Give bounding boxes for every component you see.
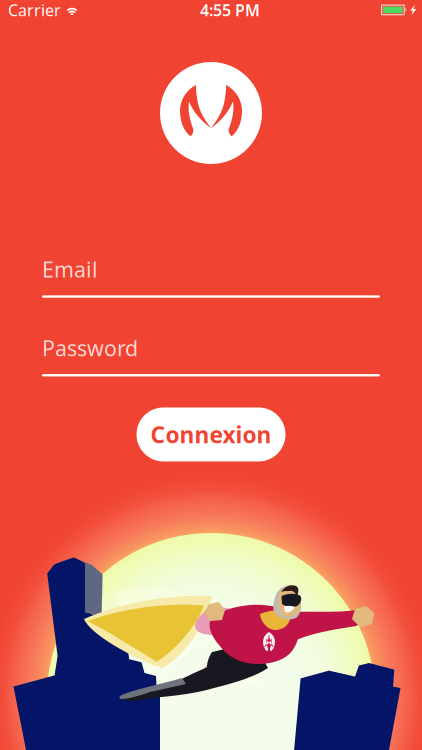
staticText: Carrier (8, 0, 61, 21)
staticText: Connexion (150, 419, 271, 449)
staticText: 4:55 PM (200, 0, 260, 21)
staticText: Email (42, 255, 98, 283)
button[interactable]: Connexion (136, 407, 285, 461)
staticText: Password (42, 334, 138, 362)
